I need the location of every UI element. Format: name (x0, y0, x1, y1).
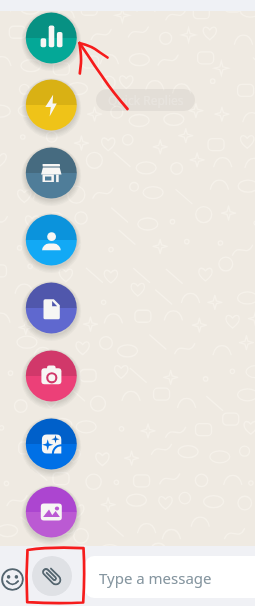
button[interactable]: Type a message (85, 556, 255, 598)
button[interactable]: Emoji (0, 567, 24, 591)
staticText: Type a message (99, 568, 212, 588)
button[interactable]: Quick Replies (96, 89, 195, 111)
staticText: Quick Replies (108, 92, 184, 108)
button[interactable]: Attach (32, 556, 72, 596)
